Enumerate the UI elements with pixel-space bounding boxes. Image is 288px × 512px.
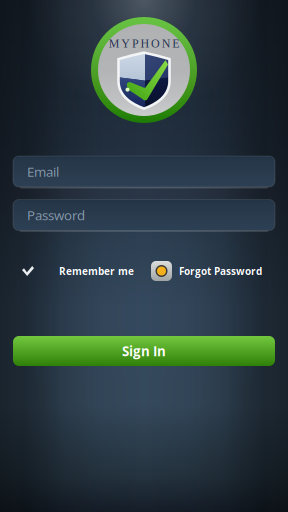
staticText: Forgot Password — [179, 264, 262, 278]
staticText: Email — [27, 162, 59, 181]
button[interactable]: Sign In — [13, 336, 275, 366]
button[interactable]: Remember me — [13, 256, 134, 286]
button[interactable]: Forgot Password — [151, 256, 275, 286]
staticText: Password — [27, 206, 85, 224]
staticText: MYPHONE — [109, 37, 179, 50]
staticText: Remember me — [59, 264, 134, 278]
staticText: Sign In — [122, 342, 166, 360]
